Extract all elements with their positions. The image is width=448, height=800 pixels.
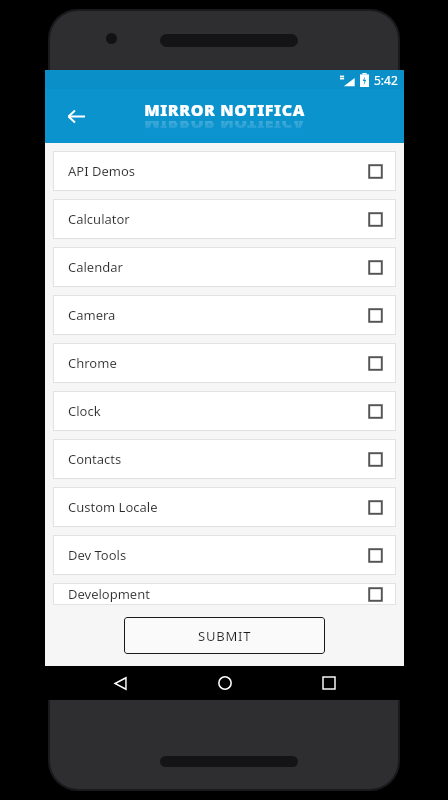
button[interactable]: Chrome	[53, 343, 396, 383]
button[interactable]: Home	[195, 666, 255, 700]
staticText: MIRROR NOTIFICA	[144, 121, 305, 134]
button[interactable]: Dev Tools	[53, 535, 396, 575]
button[interactable]: Back	[59, 99, 93, 133]
staticText: Clock	[68, 402, 368, 420]
staticText: MIRROR NOTIFICA	[144, 99, 305, 121]
staticText: API Demos	[68, 162, 368, 180]
button[interactable]: Development	[53, 583, 396, 605]
button[interactable]: Recent apps	[299, 666, 359, 700]
button[interactable]: API Demos	[53, 151, 396, 191]
staticText: 5:42	[374, 72, 398, 88]
staticText: Camera	[68, 306, 368, 324]
staticText: Development	[68, 585, 368, 603]
staticText: Calendar	[68, 258, 368, 276]
button[interactable]: Custom Locale	[53, 487, 396, 527]
button[interactable]: Back	[90, 666, 150, 700]
staticText: Contacts	[68, 450, 368, 468]
button[interactable]: SUBMIT	[124, 617, 325, 654]
staticText: Chrome	[68, 354, 368, 372]
button[interactable]: Camera	[53, 295, 396, 335]
staticText: Dev Tools	[68, 546, 368, 564]
button[interactable]: Contacts	[53, 439, 396, 479]
button[interactable]: Calendar	[53, 247, 396, 287]
staticText: Custom Locale	[68, 498, 368, 516]
button[interactable]: Clock	[53, 391, 396, 431]
button[interactable]: Calculator	[53, 199, 396, 239]
staticText: SUBMIT	[198, 627, 252, 645]
staticText: Calculator	[68, 210, 368, 228]
